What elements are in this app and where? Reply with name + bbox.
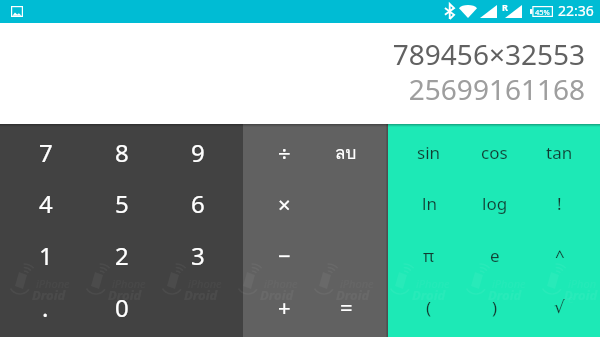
staticText: 8 <box>115 136 129 169</box>
staticText: 22:36 <box>558 1 594 20</box>
staticText: tan <box>546 141 573 164</box>
button[interactable]: 7 <box>7 127 84 178</box>
staticText: Droid <box>564 286 598 304</box>
button[interactable]: π <box>396 229 462 281</box>
button[interactable]: 0 <box>84 281 160 333</box>
staticText: 5 <box>115 187 129 220</box>
button[interactable]: 2 <box>84 229 160 281</box>
button[interactable]: e <box>462 229 527 281</box>
staticText: 6 <box>191 187 205 220</box>
staticText: × <box>278 189 291 219</box>
staticText: ln <box>422 192 437 215</box>
button[interactable]: 6 <box>160 178 236 229</box>
button[interactable]: ÷ <box>254 127 315 178</box>
staticText: 3 <box>191 239 205 272</box>
button[interactable]: √ <box>527 281 592 333</box>
staticText: 25699161168 <box>408 70 585 108</box>
button[interactable]: 5 <box>84 178 160 229</box>
staticText: Droid <box>412 286 446 304</box>
staticText: sin <box>417 141 441 164</box>
staticText: log <box>482 192 508 215</box>
button[interactable]: 8 <box>84 127 160 178</box>
staticText: Droid <box>32 286 66 304</box>
staticText: 9 <box>191 136 205 169</box>
staticText: 4 <box>39 187 53 220</box>
staticText: π <box>423 244 435 267</box>
staticText: Droid <box>184 286 218 304</box>
button[interactable]: cos <box>462 127 527 178</box>
button[interactable]: 4 <box>7 178 84 229</box>
staticText: R <box>502 1 508 13</box>
staticText: √ <box>554 297 565 317</box>
button[interactable]: ln <box>396 178 462 229</box>
button[interactable]: ( <box>396 281 462 333</box>
button[interactable]: Screenshot captured <box>11 6 23 17</box>
button[interactable]: 1 <box>7 229 84 281</box>
staticText: e <box>490 244 500 267</box>
button[interactable]: tan <box>527 127 592 178</box>
button[interactable]: log <box>462 178 527 229</box>
button[interactable]: × <box>254 178 315 229</box>
staticText: 1 <box>39 239 53 272</box>
staticText: . <box>42 291 49 324</box>
staticText: = <box>340 292 353 322</box>
staticText: 789456×32553 <box>392 35 585 73</box>
staticText: 0 <box>115 291 129 324</box>
button[interactable]: ลบ <box>315 127 377 178</box>
button[interactable]: = <box>315 281 377 333</box>
button[interactable]: sin <box>396 127 462 178</box>
button[interactable]: . <box>7 281 84 333</box>
staticText: ( <box>426 296 432 319</box>
staticText: Droid <box>488 286 522 304</box>
staticText: 2 <box>115 239 129 272</box>
button[interactable]: − <box>254 229 315 281</box>
button[interactable]: 9 <box>160 127 236 178</box>
staticText: ÷ <box>278 138 291 168</box>
button[interactable]: 3 <box>160 229 236 281</box>
button[interactable]: ^ <box>527 229 592 281</box>
staticText: iPhone <box>568 276 600 306</box>
staticText: cos <box>481 141 508 164</box>
staticText: ! <box>557 192 562 215</box>
staticText: ^ <box>555 244 565 267</box>
button[interactable]: + <box>254 281 315 333</box>
staticText: Droid <box>108 286 142 304</box>
staticText: Droid <box>260 286 294 304</box>
staticText: − <box>278 240 291 270</box>
staticText: 7 <box>39 136 53 169</box>
staticText: + <box>278 292 291 322</box>
staticText: ลบ <box>335 139 357 166</box>
staticText: 45% <box>535 7 550 17</box>
button[interactable]: ) <box>462 281 527 333</box>
button[interactable]: ! <box>527 178 592 229</box>
staticText: ) <box>492 296 498 319</box>
